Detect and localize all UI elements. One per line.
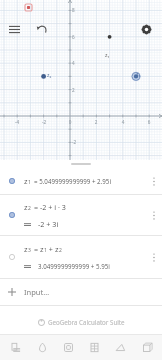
staticText: 6 bbox=[145, 119, 153, 125]
button[interactable]: Tools bbox=[4, 336, 26, 358]
staticText: = -2 + i · 3 bbox=[34, 202, 66, 212]
staticText: + bbox=[47, 244, 55, 254]
staticText: = 5.0499999999999 + 2.95i bbox=[34, 177, 111, 185]
button[interactable]: Menu bbox=[4, 19, 24, 39]
staticText: -2 bbox=[40, 119, 48, 125]
staticText: 2 bbox=[92, 119, 100, 125]
staticText: = bbox=[34, 244, 40, 254]
button[interactable]: z bbox=[0, 168, 162, 194]
staticText: -2 bbox=[72, 139, 81, 145]
staticText: z bbox=[40, 244, 44, 254]
staticText: z bbox=[24, 202, 28, 212]
staticText: z bbox=[55, 244, 59, 254]
staticText: z bbox=[24, 176, 28, 186]
button[interactable]: More options bbox=[146, 236, 162, 278]
staticText: 2 bbox=[59, 247, 62, 254]
staticText: 0 bbox=[66, 119, 74, 125]
staticText: 1 bbox=[44, 247, 47, 254]
button[interactable]: z bbox=[0, 236, 162, 278]
staticText: 4 bbox=[119, 119, 127, 125]
staticText: 3.0499999999999 + 5.95i bbox=[38, 262, 110, 270]
staticText: -2 + 3i bbox=[38, 219, 59, 229]
staticText: -4 bbox=[13, 119, 21, 125]
button[interactable]: More options bbox=[146, 168, 162, 194]
button[interactable]: Table bbox=[83, 336, 105, 358]
staticText: 6 bbox=[72, 34, 81, 40]
button[interactable]: Distribution bbox=[31, 336, 53, 358]
staticText: Input… bbox=[24, 287, 50, 297]
button[interactable]: 3D bbox=[136, 336, 158, 358]
button[interactable]: More options bbox=[146, 195, 162, 235]
staticText: GeoGebra Calculator Suite bbox=[48, 318, 125, 326]
button[interactable]: z bbox=[0, 195, 162, 235]
staticText: 1 bbox=[28, 179, 31, 186]
button[interactable]: Graphing bbox=[57, 336, 79, 358]
staticText: 3 bbox=[28, 247, 31, 254]
button[interactable]: Undo bbox=[32, 19, 52, 39]
button[interactable]: Geometry bbox=[109, 336, 131, 358]
staticText: z₃ bbox=[136, 70, 141, 77]
staticText: 2 bbox=[72, 87, 81, 93]
button[interactable]: Input… bbox=[0, 279, 162, 305]
button[interactable]: Settings bbox=[136, 19, 156, 39]
staticText: 8 bbox=[72, 7, 81, 13]
staticText: 2 bbox=[28, 205, 31, 212]
staticText: 4 bbox=[72, 60, 81, 66]
staticText: z₁ bbox=[105, 51, 110, 58]
staticText: z₂ bbox=[47, 71, 52, 78]
staticText: z bbox=[24, 244, 28, 254]
